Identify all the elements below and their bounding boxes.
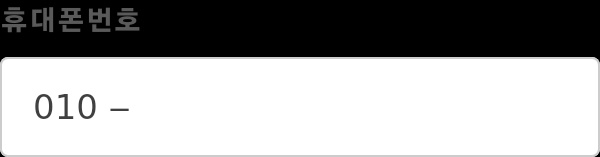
staticText: 휴대폰번호 — [1, 9, 143, 35]
staticText: 010 ‒ — [33, 87, 131, 127]
button[interactable]: 010 ‒ — [0, 57, 600, 157]
